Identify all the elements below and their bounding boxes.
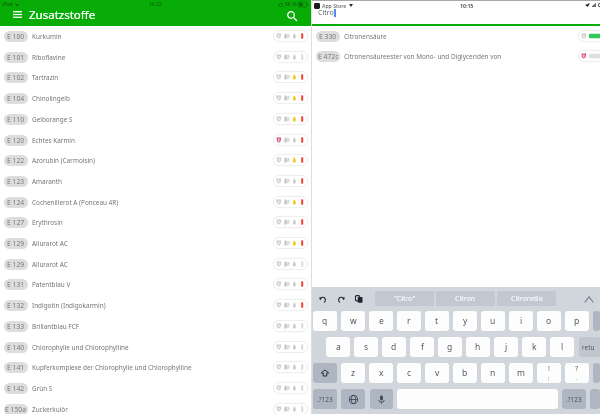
staticText: E 100: [7, 32, 25, 41]
staticText: d: [391, 341, 397, 353]
staticText: k: [532, 341, 537, 353]
staticText: iPad: [2, 1, 13, 8]
button[interactable]: w: [341, 311, 365, 331]
staticText: b: [462, 367, 468, 379]
button[interactable]: !: [537, 363, 561, 383]
button[interactable]: "Citro": [375, 291, 434, 306]
staticText: Chlorophylle und Chlorophylline: [32, 343, 129, 352]
button[interactable]: E 127: [0, 212, 311, 232]
staticText: Citronensäure: [344, 32, 387, 41]
button[interactable]: E 132: [0, 295, 311, 315]
staticText: Citronella: [511, 294, 543, 304]
staticText: l: [561, 341, 564, 353]
staticText: E 129: [7, 239, 25, 248]
button[interactable]: Citronella: [497, 291, 556, 306]
button[interactable]: E 133: [0, 316, 311, 336]
button[interactable]: Hide keyboard: [590, 389, 600, 409]
button[interactable]: k: [522, 337, 546, 357]
staticText: .?123: [317, 395, 333, 404]
staticText: Citro: [318, 8, 334, 18]
staticText: o: [546, 315, 552, 327]
button[interactable]: ?: [565, 363, 589, 383]
button[interactable]: g: [438, 337, 462, 357]
button[interactable]: E 101: [0, 47, 311, 67]
staticText: Indigotin (Indigokarmin): [32, 301, 106, 310]
button[interactable]: E 122: [0, 150, 311, 170]
button[interactable]: d: [382, 337, 406, 357]
button[interactable]: E 100: [0, 26, 311, 46]
button[interactable]: z: [341, 363, 365, 383]
button[interactable]: u: [481, 311, 505, 331]
button[interactable]: m: [509, 363, 533, 383]
staticText: h: [475, 341, 481, 353]
button[interactable]: t: [425, 311, 449, 331]
button[interactable]: E 472c: [312, 46, 600, 66]
staticText: E 129: [7, 260, 25, 269]
button[interactable]: a: [326, 337, 350, 357]
button[interactable]: h: [466, 337, 490, 357]
button[interactable]: q: [313, 311, 337, 331]
button[interactable]: Switch language: [341, 389, 365, 409]
button[interactable]: r: [397, 311, 421, 331]
staticText: Kupferkomplexe der Chlorophylle und Chlo…: [32, 363, 192, 372]
button[interactable]: Shift right: [593, 363, 600, 383]
button[interactable]: retu: [579, 337, 600, 357]
button[interactable]: E 140: [0, 337, 311, 357]
button[interactable]: Backspace: [593, 311, 600, 331]
staticText: z: [351, 367, 355, 379]
button[interactable]: Menu: [12, 9, 23, 20]
button[interactable]: E 330: [312, 26, 600, 46]
staticText: E 472c: [318, 52, 339, 61]
staticText: Patentblau V: [32, 280, 71, 289]
button[interactable]: Paste: [353, 293, 364, 304]
button[interactable]: Undo: [317, 293, 328, 304]
button[interactable]: l: [550, 337, 574, 357]
button[interactable]: f: [410, 337, 434, 357]
button[interactable]: o: [537, 311, 561, 331]
staticText: x: [379, 367, 384, 379]
button[interactable]: Hide keyboard: [583, 293, 595, 305]
button[interactable]: Shift: [313, 363, 337, 383]
button[interactable]: E 102: [0, 67, 311, 87]
button[interactable]: E 123: [0, 171, 311, 191]
button[interactable]: i: [509, 311, 533, 331]
button[interactable]: b: [453, 363, 477, 383]
staticText: n: [490, 367, 496, 379]
button[interactable]: s: [354, 337, 378, 357]
staticText: Cochenillerot A (Ponceau 4R): [32, 198, 119, 207]
button[interactable]: Search: [286, 10, 298, 22]
staticText: Citronensäureester von Mono- und Diglyce…: [344, 52, 502, 61]
button[interactable]: e: [369, 311, 393, 331]
button[interactable]: p: [565, 311, 589, 331]
staticText: c: [407, 367, 412, 379]
staticText: a: [336, 341, 341, 353]
button[interactable]: Redo: [335, 293, 346, 304]
button[interactable]: E 131: [0, 274, 311, 294]
button[interactable]: E 129: [0, 233, 311, 253]
button[interactable]: Citron: [436, 291, 495, 306]
button[interactable]: x: [369, 363, 393, 383]
button[interactable]: j: [494, 337, 518, 357]
button[interactable]: E 120: [0, 130, 311, 150]
staticText: .?123: [566, 395, 582, 404]
button[interactable]: n: [481, 363, 505, 383]
staticText: 10:22: [149, 1, 162, 8]
button[interactable]: E 129: [0, 254, 311, 274]
button[interactable]: y: [453, 311, 477, 331]
button[interactable]: E 110: [0, 109, 311, 129]
staticText: j: [505, 341, 508, 353]
button[interactable]: .?123: [313, 389, 337, 409]
button[interactable]: E 104: [0, 88, 311, 108]
button[interactable]: Dictate: [370, 389, 393, 409]
button[interactable]: E 150a: [0, 399, 311, 414]
button[interactable]: c: [397, 363, 421, 383]
button[interactable]: E 124: [0, 192, 311, 212]
button[interactable]: E 141: [0, 357, 311, 377]
staticText: y: [463, 315, 468, 327]
button[interactable]: E 142: [0, 378, 311, 398]
button[interactable]: v: [425, 363, 449, 383]
staticText: g: [447, 341, 453, 353]
staticText: E 110: [7, 115, 25, 124]
button[interactable]: .?123: [562, 389, 586, 409]
